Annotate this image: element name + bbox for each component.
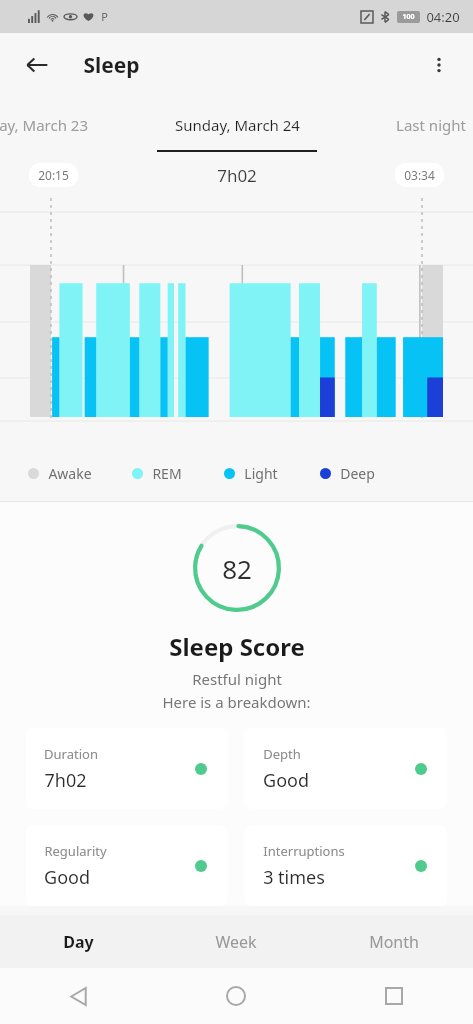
staticText: Good [44, 865, 90, 890]
staticText: 7h02 [44, 768, 87, 793]
button[interactable]: Interruptions [245, 825, 447, 906]
staticText: 3 times [263, 865, 325, 890]
staticText: Duration [44, 745, 98, 763]
staticText: Week [215, 931, 257, 953]
button[interactable]: rday, March 23 [0, 97, 116, 152]
staticText: Deep [340, 464, 375, 483]
staticText: P [101, 9, 108, 24]
button[interactable]: REM [132, 464, 182, 483]
staticText: rday, March 23 [0, 115, 88, 135]
staticText: Last night [396, 115, 466, 135]
staticText: Depth [263, 745, 301, 763]
button[interactable]: Regularity [26, 825, 227, 906]
staticText: Sunday, March 24 [175, 115, 300, 135]
button[interactable]: Last night [361, 97, 473, 152]
button[interactable]: Back [14, 42, 60, 88]
button[interactable]: Home [157, 968, 315, 1024]
button[interactable]: Sunday, March 24 [147, 97, 327, 152]
staticText: 82 [222, 551, 252, 586]
staticText: Light [244, 464, 278, 483]
button[interactable]: Day [0, 915, 157, 968]
staticText: 7h02 [217, 164, 257, 187]
staticText: Interruptions [263, 842, 345, 860]
button[interactable]: More options [417, 43, 461, 87]
staticText: Sleep [83, 51, 140, 80]
staticText: Restful night [192, 669, 282, 689]
staticText: Month [369, 931, 419, 953]
button[interactable]: Duration [26, 728, 227, 809]
staticText: 20:15 [38, 167, 69, 183]
staticText: Awake [48, 464, 92, 483]
button[interactable]: Depth [245, 728, 447, 809]
button[interactable]: Light [224, 464, 278, 483]
staticText: Sleep Score [169, 630, 305, 663]
staticText: Here is a breakdown: [162, 692, 311, 712]
staticText: Regularity [44, 842, 107, 860]
staticText: 04:20 [426, 8, 460, 26]
staticText: Good [263, 768, 309, 793]
button[interactable]: Recents [315, 968, 473, 1024]
staticText: 03:34 [404, 167, 435, 183]
button[interactable]: Awake [28, 464, 92, 483]
button[interactable]: Deep [320, 464, 375, 483]
button[interactable]: Back [0, 968, 157, 1024]
button[interactable]: Month [315, 915, 473, 968]
staticText: REM [152, 464, 182, 483]
staticText: 100 [402, 12, 415, 22]
staticText: Day [63, 931, 94, 953]
button[interactable]: Week [157, 915, 315, 968]
